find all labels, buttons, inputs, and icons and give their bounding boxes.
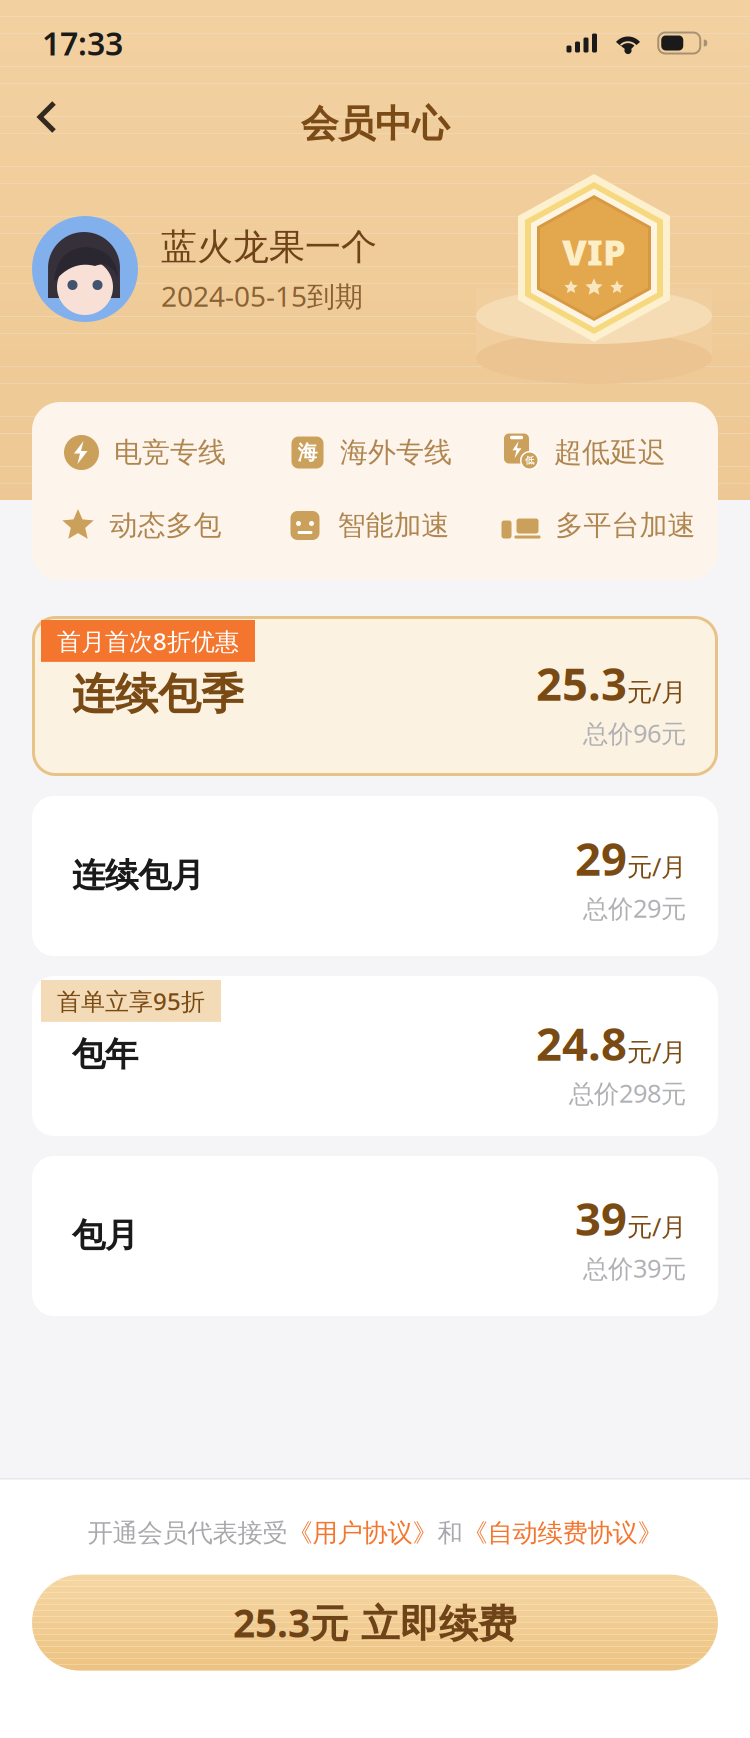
staticText: 总价39元 xyxy=(583,1251,686,1285)
button[interactable]: 《用户协议》 xyxy=(287,1517,437,1549)
button[interactable]: 包月 xyxy=(32,1156,718,1316)
staticText: 总价29元 xyxy=(583,891,686,925)
staticText: 动态多包 xyxy=(109,508,221,543)
staticText: 多平台加速 xyxy=(555,508,695,543)
staticText: 海外专线 xyxy=(340,435,452,470)
staticText: 39 xyxy=(575,1188,627,1248)
staticText: 25.3 xyxy=(536,653,627,713)
staticText: 总价298元 xyxy=(569,1076,686,1110)
staticText: 首月首次8折优惠 xyxy=(57,625,239,657)
staticText: 《自动续费协议》 xyxy=(462,1517,662,1549)
button[interactable]: 连续包季 xyxy=(32,616,718,776)
staticText: 《用户协议》 xyxy=(287,1517,437,1549)
button[interactable]: 25.3元 立即续费 xyxy=(0,1575,750,1671)
staticText: 海 xyxy=(297,440,317,465)
staticText: 低 xyxy=(525,455,534,466)
staticText: 和 xyxy=(437,1517,462,1549)
button[interactable]: 返回 xyxy=(16,83,78,151)
staticText: 17:33 xyxy=(42,22,123,64)
button[interactable]: 包年 xyxy=(32,976,718,1136)
staticText: 元/月 xyxy=(627,675,686,708)
staticText: 元/月 xyxy=(627,1035,686,1068)
staticText: 开通会员代表接受 xyxy=(87,1517,287,1549)
staticText: 总价96元 xyxy=(583,716,686,750)
button[interactable]: 连续包月 xyxy=(32,796,718,956)
staticText: 会员中心 xyxy=(301,101,449,147)
staticText: 包月 xyxy=(72,1215,138,1256)
staticText: 智能加速 xyxy=(337,508,449,543)
staticText: 首单立享95折 xyxy=(57,985,205,1017)
staticText: 24.8 xyxy=(536,1013,627,1073)
staticText: 元/月 xyxy=(627,850,686,883)
staticText: VIP xyxy=(562,228,626,275)
staticText: 29 xyxy=(575,828,627,888)
staticText: 连续包季 xyxy=(72,668,244,720)
staticText: 25.3元 立即续费 xyxy=(233,1597,517,1648)
staticText: 元/月 xyxy=(627,1210,686,1243)
staticText: 2024-05-15到期 xyxy=(161,277,363,314)
staticText: 连续包月 xyxy=(72,855,204,896)
staticText: 包年 xyxy=(72,1034,138,1075)
staticText: 电竞专线 xyxy=(114,435,226,470)
button[interactable]: 《自动续费协议》 xyxy=(462,1517,662,1549)
staticText: 超低延迟 xyxy=(554,435,666,470)
staticText: 蓝火龙果一个 xyxy=(161,225,377,269)
